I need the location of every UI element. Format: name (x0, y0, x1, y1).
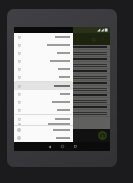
button[interactable] (14, 65, 73, 73)
button[interactable] (14, 115, 73, 123)
button[interactable]: Recent apps (69, 142, 82, 151)
button[interactable] (14, 123, 73, 125)
button[interactable]: Home (56, 142, 69, 151)
button[interactable] (14, 45, 110, 49)
button[interactable] (14, 57, 110, 61)
button[interactable] (14, 74, 110, 80)
button[interactable] (14, 82, 73, 90)
button[interactable] (14, 69, 110, 73)
button[interactable]: Back (43, 142, 56, 151)
button[interactable] (14, 73, 73, 81)
button[interactable] (14, 86, 110, 92)
button[interactable] (14, 134, 73, 142)
button[interactable] (14, 62, 110, 68)
button[interactable] (14, 126, 73, 134)
button[interactable] (14, 57, 73, 65)
button[interactable] (14, 81, 110, 85)
button[interactable] (14, 33, 73, 41)
button[interactable] (14, 98, 73, 106)
button[interactable] (14, 106, 73, 114)
button[interactable] (14, 41, 73, 49)
button[interactable] (14, 50, 110, 56)
button[interactable]: Play audio (14, 129, 110, 142)
button[interactable] (14, 93, 110, 97)
button[interactable] (14, 110, 110, 116)
button[interactable]: Play audio (98, 131, 107, 140)
button[interactable]: Search (90, 36, 97, 43)
button[interactable] (14, 98, 110, 104)
button[interactable] (14, 105, 110, 109)
button[interactable] (14, 49, 73, 57)
button[interactable] (14, 90, 73, 98)
